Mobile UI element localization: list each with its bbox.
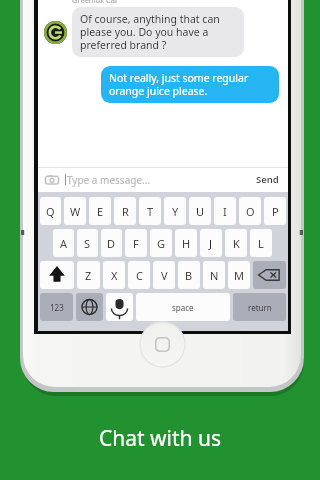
staticText: Not really, just some regular orange jui… <box>109 71 271 98</box>
staticText: Q <box>46 204 55 219</box>
staticText: H <box>182 236 191 251</box>
staticText: P <box>272 204 279 219</box>
button[interactable]: Q <box>40 197 61 225</box>
staticText: E <box>97 204 104 219</box>
button[interactable]: N <box>203 261 225 289</box>
button[interactable]: B <box>178 261 200 289</box>
staticText: N <box>210 268 219 283</box>
staticText: Z <box>85 268 92 283</box>
staticText: M <box>234 268 244 283</box>
staticText: T <box>147 204 154 219</box>
staticText: I <box>223 204 227 219</box>
staticText: space <box>172 302 194 313</box>
button[interactable]: Not really, just some regular orange jui… <box>101 66 279 103</box>
button[interactable]: D <box>101 229 122 257</box>
button[interactable]: X <box>103 261 125 289</box>
button[interactable]: E <box>89 197 111 225</box>
button[interactable]: I <box>214 197 236 225</box>
button[interactable]: 123 <box>40 293 73 321</box>
button[interactable]: F <box>125 229 147 257</box>
button[interactable]: J <box>200 229 222 257</box>
staticText: D <box>107 236 116 251</box>
button[interactable]: Z <box>77 261 100 289</box>
staticText: C <box>136 268 143 283</box>
button[interactable]: M <box>228 261 250 289</box>
staticText: Of course, anything that can please you.… <box>80 12 236 52</box>
button[interactable]: S <box>77 229 98 257</box>
button[interactable]: Change keyboard <box>76 293 103 321</box>
button[interactable]: Camera <box>45 173 59 187</box>
button[interactable]: Shift <box>40 261 74 289</box>
button[interactable]: V <box>153 261 175 289</box>
button[interactable]: Send <box>254 170 281 189</box>
staticText: Type a message... <box>67 173 151 187</box>
button[interactable]: O <box>239 197 261 225</box>
staticText: Chat with us <box>0 424 320 453</box>
staticText: Y <box>172 204 179 219</box>
button[interactable]: space <box>136 293 230 321</box>
button[interactable]: H <box>175 229 197 257</box>
staticText: R <box>122 204 129 219</box>
staticText: S <box>84 236 91 251</box>
staticText: J <box>209 236 213 251</box>
staticText: return <box>248 302 272 313</box>
staticText: 123 <box>50 302 64 313</box>
staticText: X <box>111 268 118 283</box>
staticText: W <box>70 204 81 219</box>
button[interactable]: return <box>233 293 286 321</box>
button[interactable]: R <box>114 197 136 225</box>
staticText: F <box>133 236 139 251</box>
button[interactable]: P <box>264 197 286 225</box>
button[interactable]: A <box>53 229 74 257</box>
button[interactable]: L <box>250 229 272 257</box>
button[interactable]: G <box>150 229 172 257</box>
button[interactable]: Voice input <box>106 293 133 321</box>
staticText: U <box>196 204 205 219</box>
button[interactable]: Y <box>164 197 186 225</box>
staticText: V <box>161 268 168 283</box>
staticText: G <box>157 236 166 251</box>
staticText: O <box>246 204 255 219</box>
button[interactable]: U <box>189 197 211 225</box>
button[interactable]: Backspace <box>253 261 286 289</box>
staticText: B <box>185 268 193 283</box>
button[interactable]: Of course, anything that can please you.… <box>72 7 244 57</box>
staticText: L <box>258 236 264 251</box>
staticText: K <box>233 236 240 251</box>
button[interactable]: T <box>139 197 161 225</box>
button[interactable]: Home <box>140 322 185 367</box>
button[interactable]: K <box>225 229 247 257</box>
staticText: Greenlux Car <box>72 0 119 5</box>
button[interactable]: W <box>64 197 86 225</box>
staticText: Send <box>256 173 279 186</box>
button[interactable]: C <box>128 261 150 289</box>
staticText: A <box>60 236 68 251</box>
